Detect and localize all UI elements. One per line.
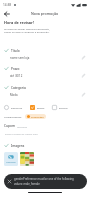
staticText: Imagens — [11, 144, 25, 148]
button[interactable]: Comida/bebida — [4, 115, 22, 118]
button[interactable]: Promo image — [20, 152, 34, 166]
button[interactable]: Imagens — [4, 143, 25, 148]
staticText: Esporte — [59, 106, 68, 109]
staticText: Promoções — [31, 115, 44, 118]
button[interactable]: Back — [2, 9, 12, 19]
button[interactable]: Prazo — [4, 66, 20, 71]
button[interactable]: Título — [4, 48, 20, 53]
button[interactable]: Beleza — [30, 105, 45, 110]
staticText: Moda — [10, 93, 18, 97]
button[interactable]: Promoções — [25, 114, 46, 119]
staticText: nome sem loja — [10, 56, 30, 60]
staticText: Eletrônico — [11, 106, 23, 109]
staticText: Categoria — [11, 86, 26, 90]
staticText: Nova promoção — [31, 11, 59, 16]
button[interactable]: nome sem loja — [10, 55, 86, 60]
staticText: até 30/12 — [10, 74, 23, 78]
staticText: insira o código do cupom aqui — [5, 133, 38, 136]
staticText: Título — [11, 49, 20, 53]
staticText: Hora de revisar! — [4, 20, 34, 25]
button[interactable]: Moda — [10, 92, 86, 97]
staticText: 14:38 — [3, 3, 12, 7]
staticText: opcional — [17, 125, 28, 128]
staticText: Prazo — [11, 67, 20, 71]
button[interactable]: Add image — [4, 152, 18, 166]
staticText: Cupom — [4, 124, 15, 128]
staticText: genderPreference must be one of the foll… — [14, 177, 74, 186]
staticText: Beleza — [37, 106, 45, 109]
button[interactable]: até 30/12 — [10, 73, 86, 78]
staticText: Se precisar alterar alguma informação, c… — [4, 27, 50, 34]
button[interactable]: Categoria — [4, 85, 26, 90]
button[interactable]: Eletrônico — [4, 105, 23, 110]
button[interactable]: Close — [7, 179, 12, 184]
button[interactable]: Esporte — [52, 105, 68, 110]
staticText: Adicionar — [6, 161, 16, 164]
